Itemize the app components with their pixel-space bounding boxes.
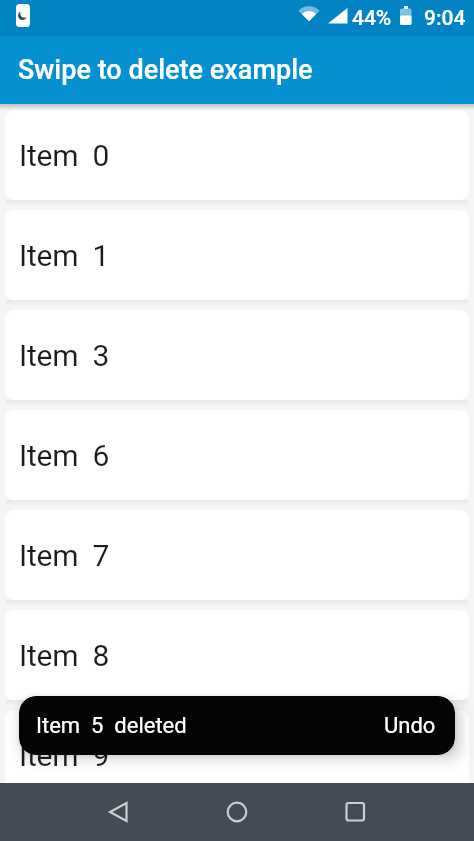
button[interactable] <box>158 783 316 841</box>
staticText: 44% <box>352 6 392 31</box>
staticText: Item 7 <box>19 538 110 573</box>
staticText: Item 1 <box>19 238 110 273</box>
button[interactable]: Item 3 <box>5 310 469 400</box>
staticText: Item 6 <box>19 438 110 473</box>
button[interactable]: Item 7 <box>5 510 469 600</box>
staticText: Item 9 <box>19 738 110 773</box>
button[interactable] <box>0 783 158 841</box>
staticText: Item 5 deleted <box>36 713 187 739</box>
button[interactable]: Undo <box>384 713 436 739</box>
button[interactable]: Item 5 deleted <box>19 696 455 755</box>
button[interactable]: Item 0 <box>5 110 469 200</box>
staticText: Item 0 <box>19 138 110 173</box>
staticText: 9:04 <box>424 6 466 31</box>
button[interactable]: Item 8 <box>5 610 469 700</box>
button[interactable]: Item 1 <box>5 210 469 300</box>
button[interactable] <box>316 783 474 841</box>
staticText: Item 3 <box>19 338 110 373</box>
staticText: Item 8 <box>19 638 110 673</box>
button[interactable]: Item 6 <box>5 410 469 500</box>
staticText: Swipe to delete example <box>18 54 313 86</box>
button[interactable]: Item 9 <box>5 710 469 800</box>
